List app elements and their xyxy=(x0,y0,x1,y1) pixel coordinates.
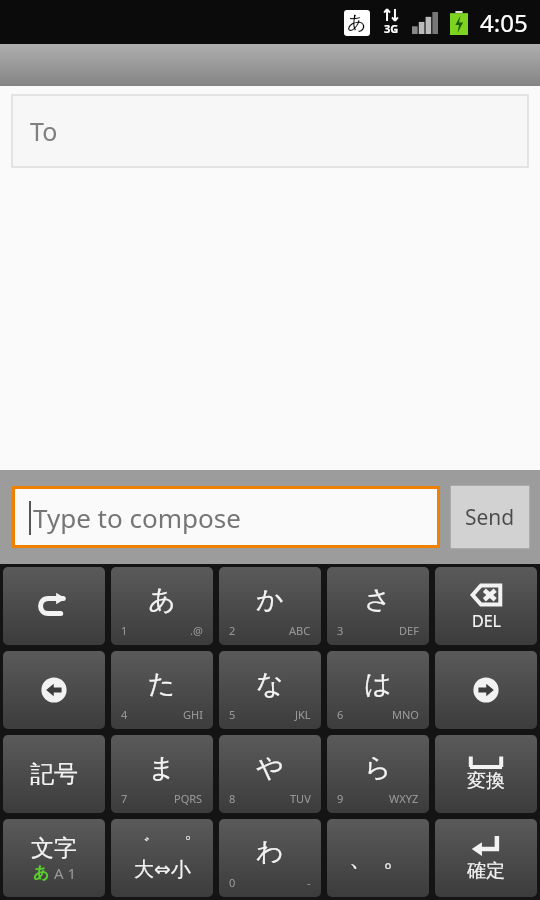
button[interactable]: ら xyxy=(327,735,429,813)
staticText: Type to compose xyxy=(33,500,241,535)
button[interactable]: 大小 濁点 xyxy=(111,819,213,897)
staticText: 記号 xyxy=(30,759,78,789)
staticText: は xyxy=(364,667,392,701)
staticText: 。 xyxy=(383,843,407,873)
button[interactable]: あ xyxy=(111,567,213,645)
staticText: さ xyxy=(364,583,392,617)
staticText: DEL xyxy=(472,610,501,632)
button[interactable]: Type to compose xyxy=(12,486,440,548)
staticText: 3G xyxy=(384,21,399,36)
staticText: 7 xyxy=(121,791,128,806)
button[interactable]: 文字 入力切替 xyxy=(3,819,105,897)
button[interactable]: 句読点 xyxy=(327,819,429,897)
staticText: あ xyxy=(148,583,176,617)
staticText: な xyxy=(256,667,284,701)
staticText: か xyxy=(256,583,284,617)
staticText: 6 xyxy=(337,707,344,722)
staticText: た xyxy=(148,667,176,701)
button[interactable]: な xyxy=(219,651,321,729)
staticText: Send xyxy=(465,503,515,532)
button[interactable]: Send xyxy=(450,485,530,549)
staticText: 文字 xyxy=(31,834,77,863)
staticText: ら xyxy=(364,751,392,785)
staticText: わ xyxy=(256,835,284,869)
button[interactable]: To xyxy=(12,95,528,167)
button[interactable]: 確定 xyxy=(435,819,537,897)
staticText: MNO xyxy=(392,707,419,722)
staticText: 、 xyxy=(349,843,373,873)
staticText: .@ xyxy=(190,623,203,638)
staticText: JKL xyxy=(295,707,311,722)
button[interactable]: Move left xyxy=(3,651,105,729)
staticText: 大⇔小 xyxy=(134,857,191,882)
button[interactable]: わ xyxy=(219,819,321,897)
button[interactable]: た xyxy=(111,651,213,729)
button[interactable]: さ xyxy=(327,567,429,645)
staticText: 4:05 xyxy=(480,6,528,39)
staticText: ゛ xyxy=(132,834,151,857)
staticText: 確定 xyxy=(467,859,505,883)
staticText: TUV xyxy=(290,791,311,806)
staticText: 3 xyxy=(337,623,344,638)
staticText: 0 xyxy=(229,875,236,890)
button[interactable]: Delete xyxy=(435,567,537,645)
staticText: - xyxy=(307,875,311,890)
staticText: WXYZ xyxy=(389,791,419,806)
staticText: 8 xyxy=(229,791,236,806)
staticText: DEF xyxy=(399,623,419,638)
button[interactable]: や xyxy=(219,735,321,813)
staticText: To xyxy=(30,114,58,148)
staticText: 変換 xyxy=(467,769,505,793)
staticText: 4 xyxy=(121,707,128,722)
button[interactable]: か xyxy=(219,567,321,645)
staticText: 9 xyxy=(337,791,344,806)
button[interactable]: Move right xyxy=(435,651,537,729)
staticText: 1 xyxy=(121,623,128,638)
staticText: 5 xyxy=(229,707,236,722)
staticText: あ xyxy=(33,863,50,883)
staticText: ABC xyxy=(289,623,311,638)
staticText: 2 xyxy=(229,623,236,638)
staticText: あ xyxy=(347,11,367,35)
button[interactable]: Undo xyxy=(3,567,105,645)
staticText: A 1 xyxy=(50,863,76,883)
button[interactable]: 変換 xyxy=(435,735,537,813)
staticText: ま xyxy=(148,751,176,785)
staticText: や xyxy=(256,751,284,785)
staticText: GHI xyxy=(183,707,203,722)
button[interactable]: は xyxy=(327,651,429,729)
staticText: PQRS xyxy=(174,791,203,806)
staticText: ゜ xyxy=(173,834,192,857)
button[interactable]: ま xyxy=(111,735,213,813)
button[interactable]: 記号 xyxy=(3,735,105,813)
